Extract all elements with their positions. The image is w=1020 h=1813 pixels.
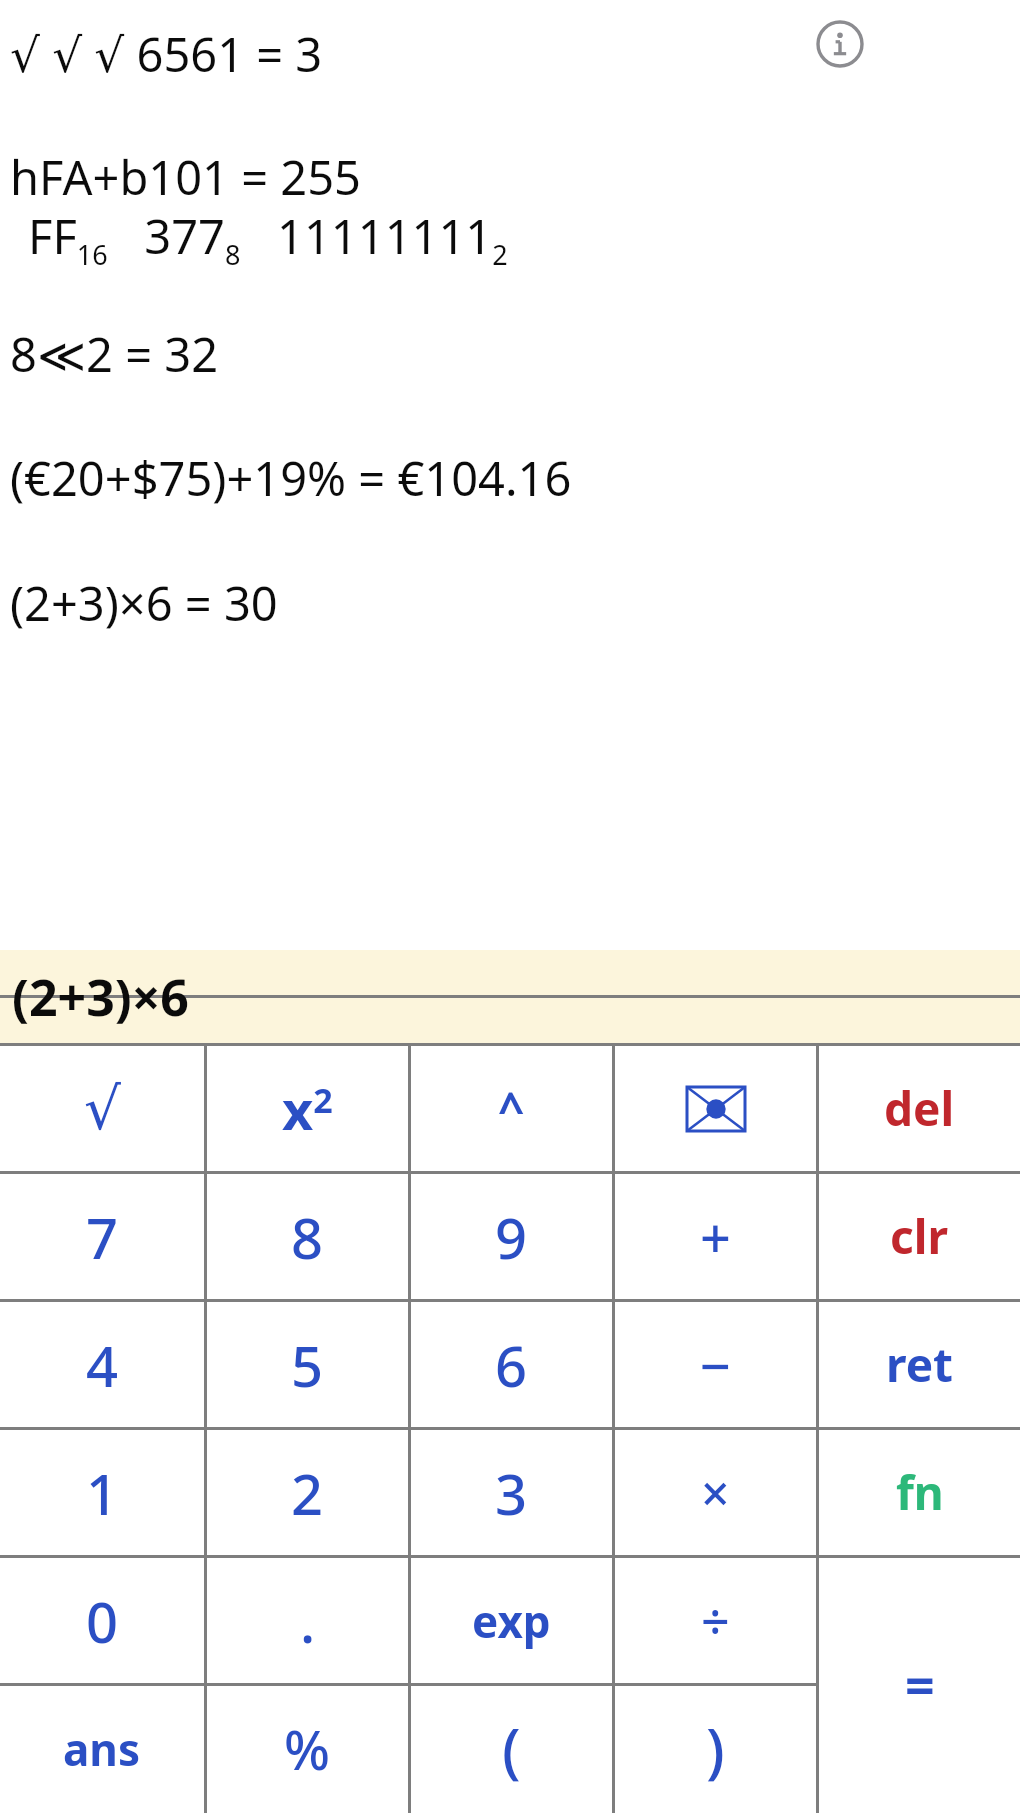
button[interactable]: 7 [0,1174,204,1299]
button[interactable]: 8 [207,1174,408,1299]
staticText: √ [84,1075,121,1143]
staticText: ( [502,1708,521,1790]
staticText: 7 [86,1199,119,1275]
button[interactable]: ÷ [615,1558,816,1683]
staticText: 6 [495,1327,528,1403]
staticText: 9 [495,1199,528,1275]
button[interactable]: % [207,1686,408,1811]
staticText: √ √ √ 6561 = 3 [10,22,323,86]
button[interactable]: ^ [411,1046,612,1171]
staticText: + [700,1200,731,1274]
staticText: (2+3)×6 = 30 [10,571,278,635]
button[interactable]: Info [802,6,878,82]
button[interactable]: del [819,1046,1020,1171]
button[interactable]: 3 [411,1430,612,1555]
button[interactable]: (€20+$75)+19% = €104.16 [10,446,572,510]
staticText: 8 [291,1199,324,1275]
staticText: exp [472,1591,551,1651]
button[interactable]: 6 [411,1302,612,1427]
staticText: 4 [86,1327,119,1403]
staticText: × [701,1459,730,1527]
button[interactable]: × [615,1430,816,1555]
button[interactable]: x2 [207,1046,408,1171]
button[interactable]: 8≪2 = 32 [10,322,219,386]
staticText: (€20+$75)+19% = €104.16 [10,446,572,510]
staticText: ret [886,1333,954,1396]
staticText: − [700,1328,732,1402]
button[interactable]: . [207,1558,408,1683]
button[interactable]: fn [819,1430,1020,1555]
staticText: % [284,1712,331,1786]
staticText: ) [706,1708,725,1790]
staticText: 0 [86,1583,119,1659]
button[interactable]: FF16 3778 111111112 [28,204,508,273]
button[interactable]: + [615,1174,816,1299]
button[interactable]: clr [819,1174,1020,1299]
button[interactable]: = [819,1558,1020,1811]
staticText: 8≪2 = 32 [10,322,219,386]
staticText: ÷ [701,1587,730,1655]
staticText: clr [890,1205,949,1268]
button[interactable]: √ [0,1046,204,1171]
button[interactable]: 4 [0,1302,204,1427]
staticText: hFA+b101 = 255 [10,145,361,209]
button[interactable]: exp [411,1558,612,1683]
button[interactable]: 9 [411,1174,612,1299]
button[interactable]: 0 [0,1558,204,1683]
staticText: fn [896,1461,944,1524]
staticText: ans [63,1719,141,1779]
staticText: FF16 3778 111111112 [28,204,508,273]
staticText: 5 [291,1327,324,1403]
button[interactable]: √ √ √ 6561 = 3 [10,22,323,86]
button[interactable]: 5 [207,1302,408,1427]
button[interactable]: ( [411,1686,612,1811]
button[interactable]: ans [0,1686,204,1811]
button[interactable]: ) [615,1686,816,1811]
staticText: 1 [86,1455,119,1531]
button[interactable]: Backspace [615,1046,816,1171]
button[interactable]: (2+3)×6 = 30 [10,571,278,635]
staticText: = [905,1649,935,1720]
button[interactable]: 2 [207,1430,408,1555]
button[interactable]: (2+3)×6 [0,950,1020,1043]
button[interactable]: 1 [0,1430,204,1555]
button[interactable]: hFA+b101 = 255 [10,145,361,209]
staticText: (2+3)×6 [12,963,189,1031]
staticText: 3 [495,1455,528,1531]
button[interactable]: − [615,1302,816,1427]
staticText: ^ [498,1077,525,1140]
staticText: 2 [291,1455,324,1531]
staticText: . [300,1583,316,1659]
staticText: x2 [282,1072,333,1146]
staticText: del [884,1077,955,1140]
button[interactable]: ret [819,1302,1020,1427]
